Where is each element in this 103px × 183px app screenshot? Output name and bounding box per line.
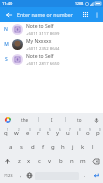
staticText: 3 bbox=[29, 128, 31, 132]
button[interactable]: e bbox=[22, 126, 33, 140]
button[interactable]: Dialpad bbox=[80, 9, 91, 20]
button[interactable]: h bbox=[58, 140, 68, 154]
button[interactable]: to bbox=[66, 117, 92, 123]
button[interactable]: n bbox=[66, 154, 77, 168]
staticText: w bbox=[14, 129, 19, 137]
button[interactable]: f bbox=[38, 140, 48, 154]
staticText: f bbox=[42, 143, 45, 151]
staticText: to bbox=[77, 117, 82, 123]
staticText: M bbox=[4, 41, 9, 48]
staticText: j bbox=[72, 143, 74, 151]
staticText: 6 bbox=[59, 128, 61, 132]
staticText: e bbox=[26, 129, 30, 137]
staticText: g bbox=[51, 143, 55, 151]
staticText: o bbox=[86, 129, 90, 137]
button[interactable]: m bbox=[77, 154, 88, 168]
button[interactable]: i bbox=[73, 126, 83, 140]
staticText: z bbox=[18, 157, 21, 165]
staticText: Note to Self bbox=[26, 53, 54, 60]
staticText: 5 bbox=[49, 128, 51, 132]
staticText: d bbox=[31, 143, 35, 151]
staticText: y bbox=[56, 129, 60, 137]
staticText: I bbox=[51, 117, 53, 123]
button[interactable]: z bbox=[14, 154, 24, 168]
button[interactable]: v bbox=[44, 154, 55, 168]
button[interactable]: Change language bbox=[25, 169, 34, 182]
staticText: m bbox=[80, 157, 86, 165]
staticText: 8 bbox=[79, 128, 81, 132]
staticText: 7 bbox=[69, 128, 71, 132]
button[interactable]: q bbox=[0, 126, 11, 140]
staticText: 4 bbox=[39, 128, 41, 132]
button[interactable]: Back bbox=[3, 9, 14, 20]
staticText: 1 bbox=[7, 128, 9, 132]
staticText: +6011 2817 6650 bbox=[26, 61, 60, 67]
staticText: i bbox=[77, 129, 79, 137]
staticText: v bbox=[48, 157, 52, 165]
button[interactable]: j bbox=[68, 140, 78, 154]
staticText: Note to Self bbox=[26, 23, 54, 30]
button[interactable]: Period bbox=[80, 169, 89, 182]
staticText: k bbox=[81, 143, 85, 151]
button[interactable]: Backspace bbox=[88, 154, 103, 168]
button[interactable]: r bbox=[33, 126, 43, 140]
button[interactable]: x bbox=[24, 154, 34, 168]
staticText: 9 bbox=[89, 128, 91, 132]
staticText: +6011 3117 8699 bbox=[26, 31, 60, 37]
button[interactable]: c bbox=[34, 154, 44, 168]
button[interactable]: ?123 bbox=[0, 169, 16, 182]
button[interactable]: M bbox=[0, 37, 103, 52]
button[interactable]: l bbox=[88, 140, 98, 154]
button[interactable]: Enter bbox=[89, 169, 103, 182]
staticText: , bbox=[20, 172, 22, 179]
button[interactable]: p bbox=[93, 126, 103, 140]
button[interactable]: b bbox=[55, 154, 66, 168]
button[interactable]: S bbox=[0, 52, 103, 67]
button[interactable]: Voice input bbox=[92, 116, 100, 124]
button[interactable]: the bbox=[11, 117, 38, 123]
button[interactable]: o bbox=[83, 126, 93, 140]
staticText: the bbox=[21, 117, 29, 123]
button[interactable]: s bbox=[16, 140, 27, 154]
button[interactable]: Comma bbox=[16, 169, 25, 182]
staticText: n bbox=[70, 157, 74, 165]
staticText: h bbox=[61, 143, 65, 151]
staticText: q bbox=[4, 129, 8, 137]
staticText: u bbox=[66, 129, 70, 137]
staticText: p bbox=[96, 129, 100, 137]
staticText: N bbox=[4, 26, 8, 33]
button[interactable]: d bbox=[27, 140, 38, 154]
staticText: t bbox=[47, 129, 50, 137]
staticText: b bbox=[59, 157, 63, 165]
button[interactable]: k bbox=[78, 140, 88, 154]
staticText: 11:40 bbox=[2, 1, 13, 6]
button[interactable]: I bbox=[39, 117, 65, 123]
button[interactable]: More options bbox=[91, 9, 102, 20]
staticText: x bbox=[27, 157, 31, 165]
staticText: s bbox=[20, 143, 23, 151]
staticText: c bbox=[38, 157, 41, 165]
staticText: My Nxxxxx bbox=[26, 38, 52, 45]
button[interactable]: N bbox=[0, 22, 103, 37]
button[interactable]: a bbox=[5, 140, 16, 154]
staticText: Enter name or number bbox=[17, 11, 73, 18]
button[interactable]: t bbox=[43, 126, 53, 140]
staticText: 128B bbox=[75, 1, 84, 6]
button[interactable]: Shift bbox=[0, 154, 14, 168]
button[interactable]: y bbox=[53, 126, 63, 140]
button[interactable]: Google bbox=[4, 116, 11, 123]
staticText: l bbox=[92, 143, 94, 151]
staticText: S bbox=[5, 56, 8, 63]
staticText: . bbox=[84, 172, 86, 179]
staticText: ?123 bbox=[4, 173, 13, 178]
button[interactable]: u bbox=[63, 126, 73, 140]
button[interactable]: g bbox=[48, 140, 58, 154]
staticText: +6011 2352 8644 bbox=[26, 46, 60, 52]
staticText: a bbox=[9, 143, 13, 151]
button[interactable]: w bbox=[11, 126, 22, 140]
staticText: 0 bbox=[99, 128, 101, 132]
staticText: 2 bbox=[18, 128, 20, 132]
staticText: r bbox=[37, 129, 40, 137]
button[interactable]: Enter name or number bbox=[17, 7, 80, 22]
